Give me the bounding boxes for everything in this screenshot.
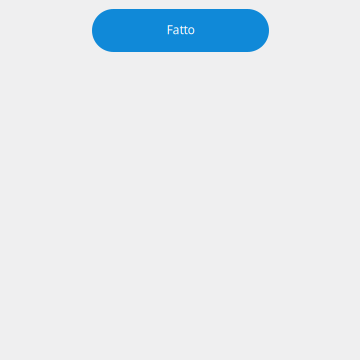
button[interactable]: Fatto (92, 9, 269, 52)
staticText: Fatto (166, 21, 194, 37)
